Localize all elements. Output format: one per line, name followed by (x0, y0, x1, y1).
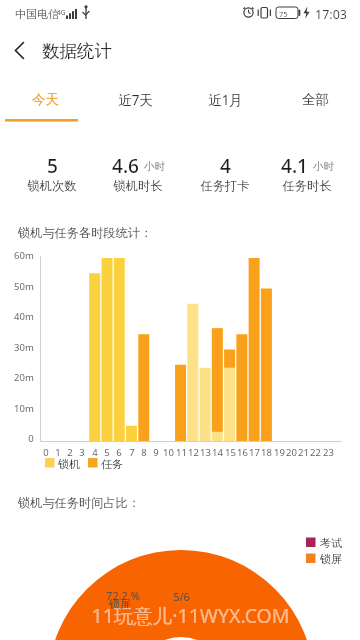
staticText: 锁屏 (109, 597, 131, 611)
staticText: 10m (14, 402, 34, 415)
staticText: 8 (141, 446, 147, 459)
staticText: 1 (55, 446, 61, 459)
staticText: 11 (176, 446, 187, 459)
staticText: 0 (28, 432, 34, 445)
staticText: 任务时长 (282, 178, 332, 193)
staticText: 锁机与任务各时段统计： (18, 225, 153, 240)
staticText: 5 (47, 153, 58, 179)
staticText: 0 (43, 446, 49, 459)
staticText: 14 (212, 446, 223, 459)
staticText: 7 (129, 446, 135, 459)
staticText: 2 (67, 446, 73, 459)
staticText: 22 (310, 446, 321, 459)
staticText: 小时 (144, 160, 165, 173)
staticText: 19 (274, 446, 285, 459)
staticText: 今天 (32, 91, 59, 108)
staticText: 任务打卡 (200, 178, 250, 193)
staticText: 4.1 (281, 153, 308, 179)
staticText: 12 (188, 446, 199, 459)
staticText: 4.6 (112, 153, 139, 179)
button[interactable]: 近7天 (90, 82, 180, 117)
staticText: 4G (57, 8, 66, 17)
staticText: 50m (14, 280, 34, 293)
staticText: 锁机与任务时间占比： (18, 495, 140, 510)
staticText: 60m (14, 249, 34, 262)
staticText: 23 (323, 446, 334, 459)
staticText: 11玩意儿·11WYX.COM (91, 602, 290, 629)
staticText: 9 (153, 446, 159, 459)
button[interactable]: 4.1 (262, 153, 352, 179)
staticText: 锁机时长 (113, 178, 163, 193)
staticText: 20m (14, 371, 34, 384)
staticText: 10 (163, 446, 174, 459)
staticText: 全部 (302, 91, 329, 108)
button[interactable]: 近1月 (180, 82, 270, 117)
staticText: 小时 (313, 160, 334, 173)
button[interactable]: 今天 (0, 82, 90, 117)
staticText: 5 (104, 446, 110, 459)
staticText: 锁机次数 (27, 178, 77, 193)
staticText: 4 (220, 153, 231, 179)
staticText: 4 (92, 446, 98, 459)
staticText: 任务 (101, 457, 123, 471)
staticText: 40m (14, 310, 34, 323)
staticText: 16 (237, 446, 248, 459)
staticText: 21 (298, 446, 309, 459)
button[interactable]: 5 (7, 153, 97, 179)
button[interactable]: 全部 (270, 82, 360, 117)
staticText: 72.2 % (106, 588, 140, 603)
staticText: 15 (225, 446, 236, 459)
staticText: 近7天 (118, 91, 153, 109)
staticText: 锁机 (58, 457, 80, 471)
staticText: 近1月 (208, 91, 243, 109)
staticText: 6 (116, 446, 122, 459)
staticText: 30m (14, 341, 34, 354)
staticText: 3 (79, 446, 85, 459)
staticText: 锁屏 (320, 552, 342, 566)
button[interactable] (8, 40, 32, 62)
button[interactable]: 4 (180, 153, 270, 179)
staticText: 17:03 (315, 6, 347, 23)
staticText: 18 (261, 446, 272, 459)
staticText: 20 (286, 446, 297, 459)
staticText: 75 (279, 9, 288, 19)
staticText: 考试 (320, 536, 342, 550)
staticText: 5/6 (173, 589, 190, 604)
button[interactable]: 4.6 (93, 153, 183, 179)
staticText: 13 (200, 446, 211, 459)
staticText: 17 (249, 446, 260, 459)
staticText: 中国电信 (15, 7, 59, 21)
staticText: 数据统计 (42, 40, 112, 62)
